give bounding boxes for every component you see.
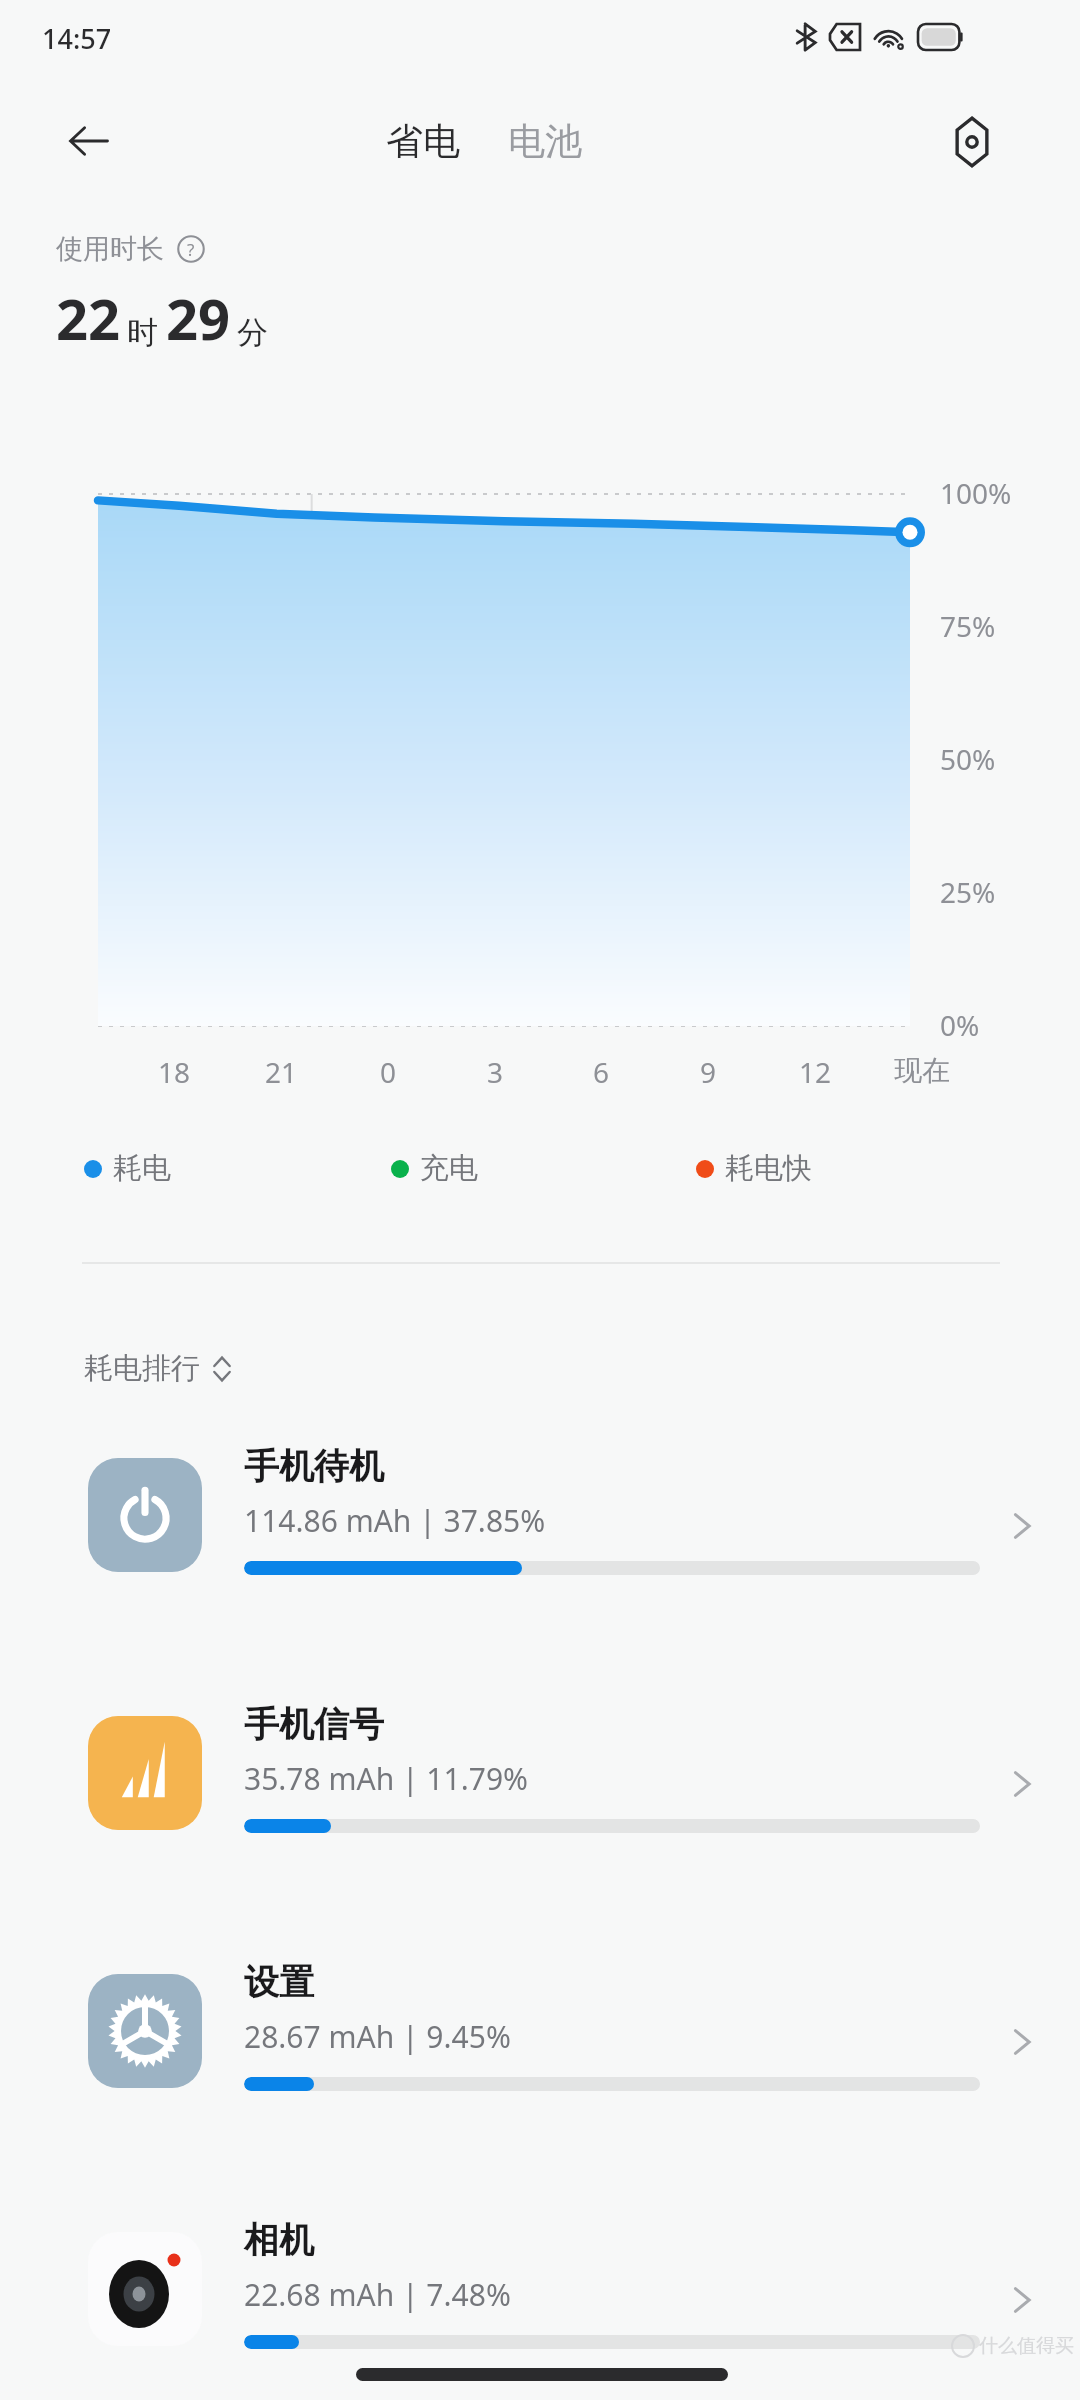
staticText: 时	[127, 313, 158, 352]
staticText: 电池	[508, 118, 582, 165]
staticText: 手机信号	[244, 1702, 384, 1746]
staticText: 相机	[244, 2218, 314, 2262]
staticText: 35.78 mAh | 11.79%	[244, 1758, 528, 1799]
staticText: 18	[144, 1053, 204, 1091]
staticText: 分	[237, 313, 268, 352]
staticText: 6	[571, 1053, 631, 1091]
staticText: 28.67 mAh | 9.45%	[244, 2016, 511, 2057]
staticText: 0%	[940, 1006, 980, 1044]
staticText: 耗电快	[725, 1150, 812, 1187]
button[interactable]: Settings	[938, 108, 1006, 176]
staticText: 现在	[892, 1053, 952, 1088]
staticText: 25%	[940, 873, 996, 911]
staticText: 耗电	[113, 1150, 171, 1187]
staticText: 省电	[386, 118, 460, 165]
staticText: 50%	[940, 740, 996, 778]
button[interactable]: 耗电排行	[84, 1350, 234, 1387]
button[interactable]: 设置	[0, 1952, 1080, 2202]
staticText: 0	[358, 1053, 418, 1091]
staticText: 21	[251, 1053, 311, 1091]
staticText: 设置	[244, 1960, 314, 2004]
staticText: 29	[166, 280, 231, 356]
staticText: ?	[187, 238, 195, 261]
staticText: 充电	[420, 1150, 478, 1187]
button[interactable]: Help	[176, 234, 206, 264]
staticText: 14:57	[42, 20, 112, 57]
staticText: 9	[678, 1053, 738, 1091]
staticText: 22.68 mAh | 7.48%	[244, 2274, 511, 2315]
staticText: 100%	[940, 474, 1012, 512]
button[interactable]: 手机信号	[0, 1694, 1080, 1944]
staticText: 12	[785, 1053, 845, 1091]
staticText: 22	[56, 280, 121, 356]
button[interactable]: 充电	[391, 1150, 478, 1187]
button[interactable]: 耗电快	[696, 1150, 812, 1187]
button[interactable]: 相机	[0, 2210, 1080, 2400]
button[interactable]: 手机待机	[0, 1436, 1080, 1686]
button[interactable]: 耗电	[84, 1150, 171, 1187]
staticText: 75%	[940, 607, 996, 645]
button[interactable]: 电池	[502, 110, 588, 173]
staticText: 耗电排行	[84, 1350, 200, 1387]
button[interactable]: 省电	[380, 110, 466, 173]
staticText: 3	[465, 1053, 525, 1091]
staticText: 手机待机	[244, 1444, 384, 1488]
staticText: 114.86 mAh | 37.85%	[244, 1500, 546, 1541]
staticText: 使用时长	[56, 232, 164, 266]
staticText: 什么值得买	[979, 2334, 1074, 2358]
button[interactable]: Back	[56, 108, 122, 174]
